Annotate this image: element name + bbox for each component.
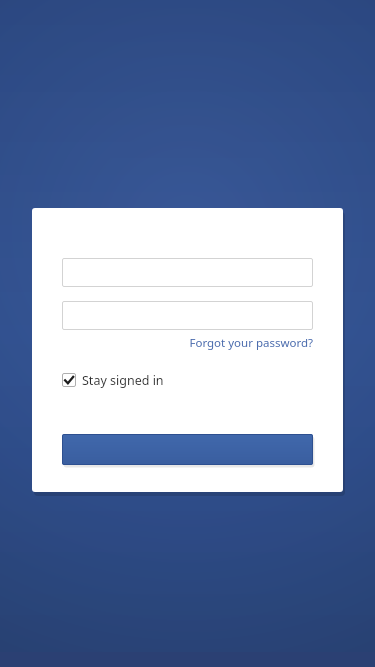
button[interactable]: Sign in bbox=[62, 434, 313, 465]
staticText: Forgot your password? bbox=[189, 335, 313, 351]
button[interactable]: Forgot your password? bbox=[62, 334, 313, 352]
button[interactable] bbox=[62, 258, 313, 287]
other: Stay signed in checkbox bbox=[62, 373, 76, 387]
staticText: Stay signed in bbox=[82, 372, 164, 389]
button[interactable] bbox=[62, 301, 313, 330]
button[interactable]: Stay signed in checkbox bbox=[62, 370, 164, 390]
